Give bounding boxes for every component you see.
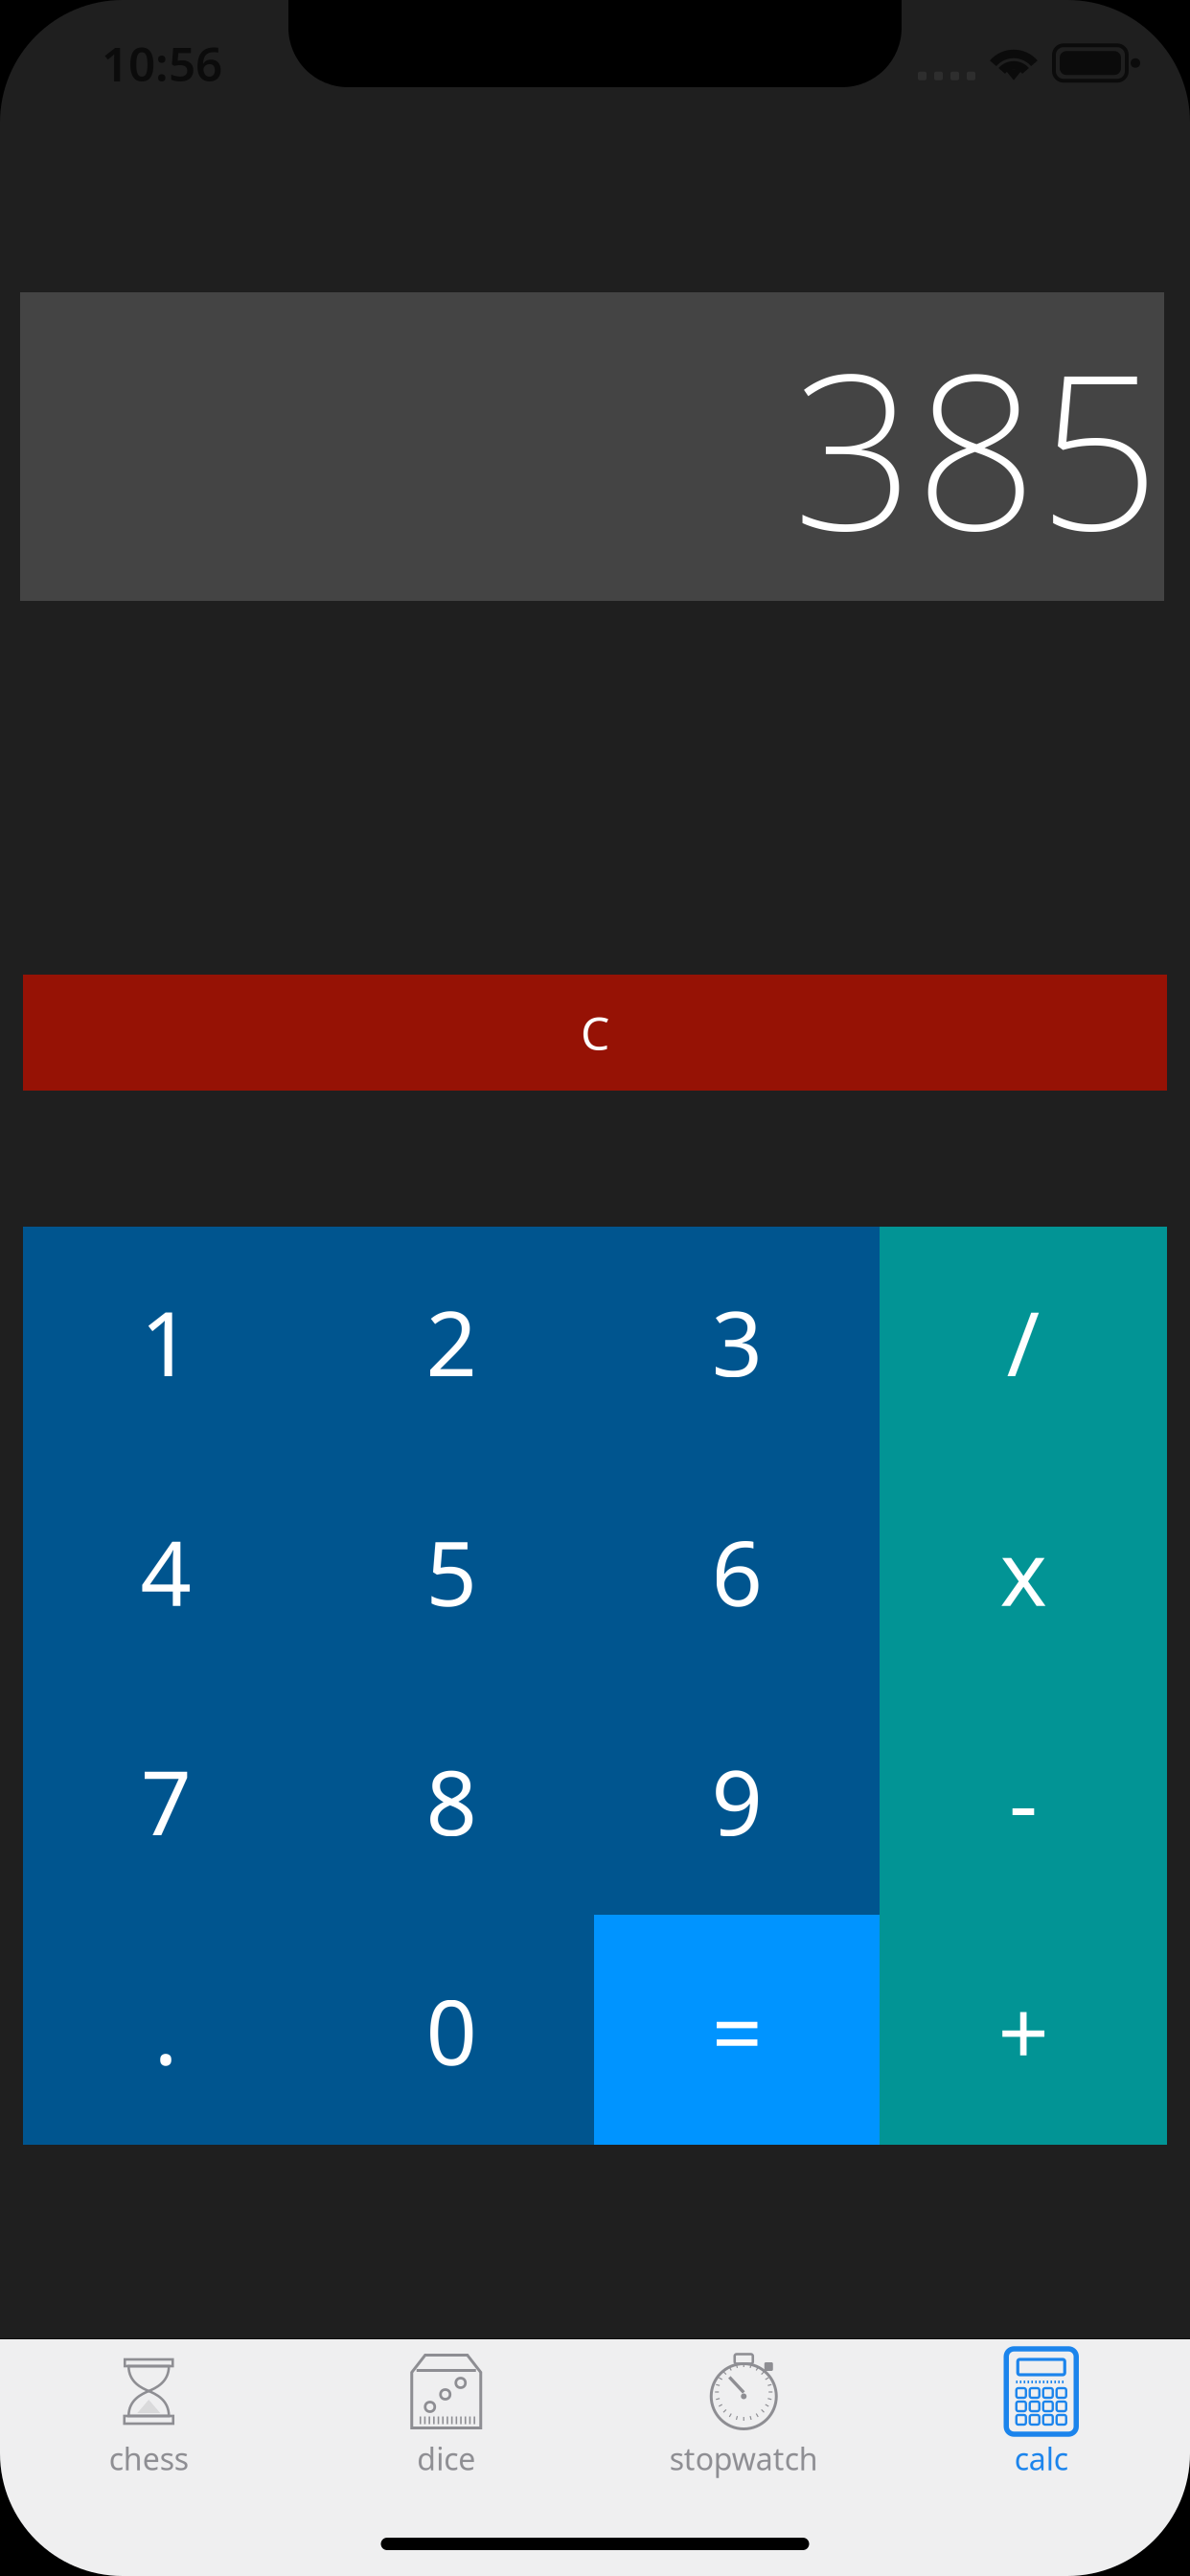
staticText: calc [1014,2438,1068,2479]
button[interactable]: 7 [23,1686,309,1916]
button[interactable]: / [880,1227,1167,1457]
staticText: 0 [426,1971,477,2090]
button[interactable]: 2 [309,1227,594,1457]
staticText: 1 [140,1282,191,1401]
staticText: / [1007,1282,1040,1401]
button[interactable]: + [880,1916,1167,2145]
button[interactable]: 4 [23,1457,309,1686]
staticText: C [581,1002,609,1063]
staticText: 2 [426,1282,477,1401]
staticText: . [154,1971,178,2090]
staticText: 10:56 [102,32,222,94]
button[interactable]: . [23,1916,309,2145]
staticText: dice [417,2438,475,2479]
button[interactable]: - [880,1686,1167,1916]
staticText: 7 [140,1741,191,1860]
staticText: stopwatch [670,2438,818,2479]
button[interactable]: dice [297,2339,595,2504]
button[interactable]: 1 [23,1227,309,1457]
staticText: x [1000,1512,1047,1631]
staticText: 3 [711,1282,762,1401]
staticText: 5 [426,1512,477,1631]
button[interactable]: 5 [309,1457,594,1686]
staticText: 4 [140,1512,191,1631]
staticText: chess [109,2438,189,2479]
button[interactable]: 9 [594,1686,880,1916]
staticText: = [711,1971,762,2090]
staticText: 6 [711,1512,762,1631]
button[interactable]: stopwatch [595,2339,892,2504]
button[interactable]: 3 [594,1227,880,1457]
button[interactable]: = [594,1916,880,2145]
staticText: - [1009,1741,1038,1860]
button[interactable]: 0 [309,1916,594,2145]
button[interactable]: chess [0,2339,297,2504]
staticText: + [998,1971,1049,2090]
staticText: 9 [711,1741,762,1860]
button[interactable]: 6 [594,1457,880,1686]
button[interactable]: 8 [309,1686,594,1916]
button[interactable]: x [880,1457,1167,1686]
staticText: 385 [792,304,1160,589]
button[interactable]: calc [892,2339,1190,2504]
button[interactable]: C [23,975,1167,1091]
staticText: 8 [426,1741,477,1860]
